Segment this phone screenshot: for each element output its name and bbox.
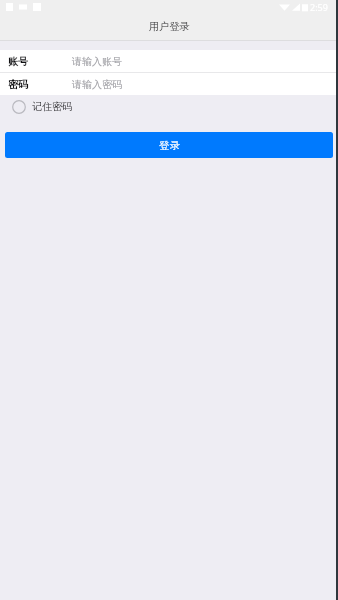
button[interactable]: 记住密码 [0, 95, 338, 118]
staticText: 登录 [159, 139, 180, 152]
button[interactable]: 密码 [0, 73, 338, 95]
staticText: 密码 [8, 78, 28, 91]
other: Battery [302, 3, 308, 12]
staticText: 记住密码 [32, 100, 72, 113]
button[interactable]: 账号 [0, 50, 338, 72]
staticText: 2:59 [310, 1, 328, 13]
other: Cellular signal [292, 3, 300, 11]
staticText: 账号 [8, 55, 28, 68]
staticText: 请输入密码 [72, 78, 122, 91]
staticText: 用户登录 [149, 20, 190, 33]
button[interactable]: 登录 [5, 132, 333, 158]
other: Notifications [6, 3, 41, 11]
other: Wi-Fi [279, 3, 290, 11]
staticText: 请输入账号 [72, 55, 122, 68]
